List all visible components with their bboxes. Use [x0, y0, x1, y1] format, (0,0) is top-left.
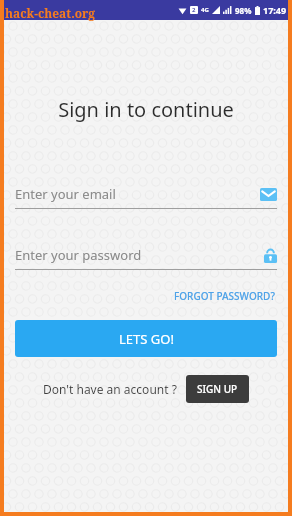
- button[interactable]: Enter your password: [15, 246, 277, 270]
- staticText: hack-cheat.org: [5, 5, 96, 21]
- button[interactable]: Enter your email: [15, 185, 277, 209]
- staticText: 98%: [235, 5, 252, 16]
- staticText: SIGN UP: [197, 382, 238, 396]
- staticText: LETS GO!: [119, 330, 174, 348]
- other: Email: [260, 188, 277, 201]
- staticText: 2: [192, 6, 196, 14]
- staticText: FORGOT PASSWORD?: [174, 289, 275, 303]
- button[interactable]: SIGN UP: [186, 375, 249, 403]
- button[interactable]: LETS GO!: [15, 320, 277, 357]
- button[interactable]: FORGOT PASSWORD?: [172, 286, 277, 306]
- staticText: Enter your email: [15, 185, 260, 203]
- staticText: 17:49: [263, 4, 287, 16]
- staticText: Don't have an account ?: [43, 381, 177, 397]
- staticText: 4G: [201, 6, 209, 14]
- staticText: Sign in to continue: [0, 96, 292, 123]
- other: Password: [264, 248, 277, 263]
- staticText: Enter your password: [15, 246, 264, 264]
